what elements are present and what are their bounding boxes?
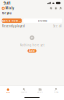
button[interactable]: Search — [49, 7, 53, 10]
staticText: For you — [2, 11, 12, 15]
button[interactable]: Notifications — [54, 7, 57, 10]
staticText: Library — [37, 91, 43, 93]
button[interactable]: Browse — [23, 18, 62, 23]
button[interactable]: Home — [0, 86, 16, 95]
staticText: Search — [21, 91, 27, 93]
button[interactable]: Mixly — [2, 6, 14, 10]
button[interactable]: Search — [16, 86, 32, 95]
button[interactable]: See all — [53, 24, 62, 28]
staticText: Nothing here yet — [19, 43, 44, 47]
staticText: Home — [6, 91, 10, 93]
button[interactable]: Account — [59, 7, 62, 10]
staticText: Recently played — [2, 24, 25, 28]
button[interactable]: Start a new mix — [2, 18, 22, 23]
button[interactable]: Add — [27, 49, 36, 53]
staticText: See all — [53, 24, 62, 28]
staticText: Profile — [53, 91, 58, 93]
staticText: Start a new mix — [2, 19, 22, 22]
button[interactable]: Profile — [48, 86, 64, 95]
staticText: Mixly — [5, 6, 14, 10]
staticText: 9:41 — [4, 0, 11, 6]
staticText: Browse — [38, 19, 48, 22]
staticText: Add — [29, 49, 35, 53]
button[interactable]: Library — [32, 86, 48, 95]
